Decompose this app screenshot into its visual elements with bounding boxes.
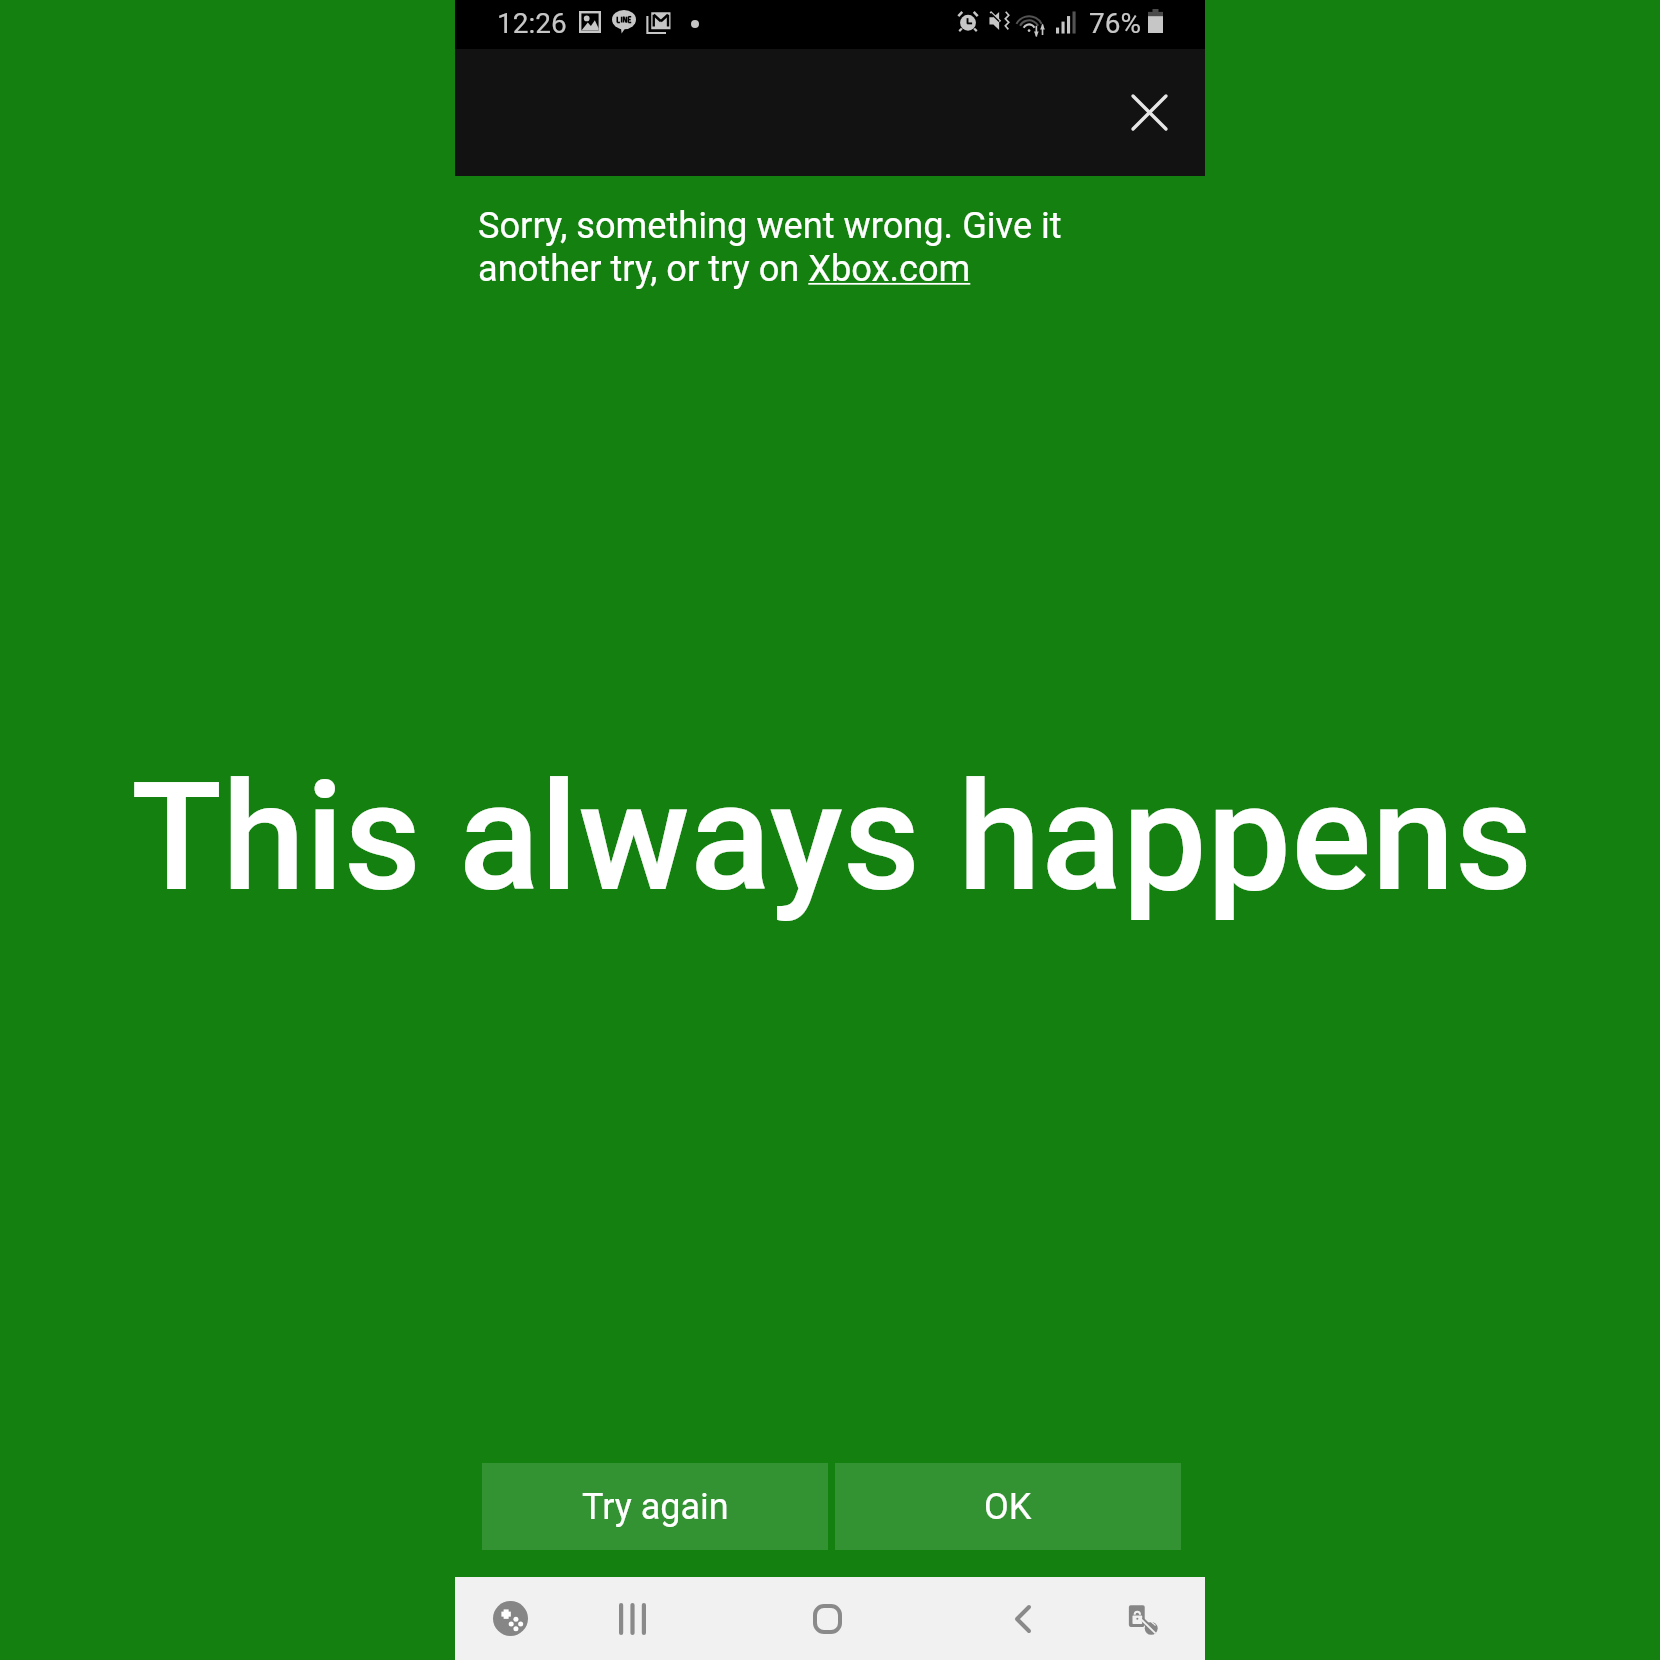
staticText: 12:26 bbox=[497, 7, 567, 40]
button[interactable]: OK bbox=[835, 1463, 1181, 1550]
button[interactable]: Lock screen bbox=[1110, 1577, 1178, 1660]
staticText: OK bbox=[984, 1486, 1032, 1528]
button[interactable]: Xbox.com bbox=[808, 247, 970, 289]
button[interactable]: Game tools bbox=[476, 1577, 544, 1660]
button[interactable]: Home bbox=[793, 1577, 861, 1660]
staticText: 76% bbox=[1089, 7, 1141, 40]
button[interactable]: Back bbox=[989, 1577, 1057, 1660]
button[interactable]: Close bbox=[1099, 62, 1199, 162]
button[interactable]: Recent apps bbox=[598, 1577, 666, 1660]
staticText: Sorry, something went wrong. Give it ano… bbox=[478, 204, 1098, 290]
staticText: This always happens bbox=[131, 750, 1533, 926]
staticText: Try again bbox=[582, 1486, 729, 1528]
button[interactable]: Try again bbox=[482, 1463, 828, 1550]
